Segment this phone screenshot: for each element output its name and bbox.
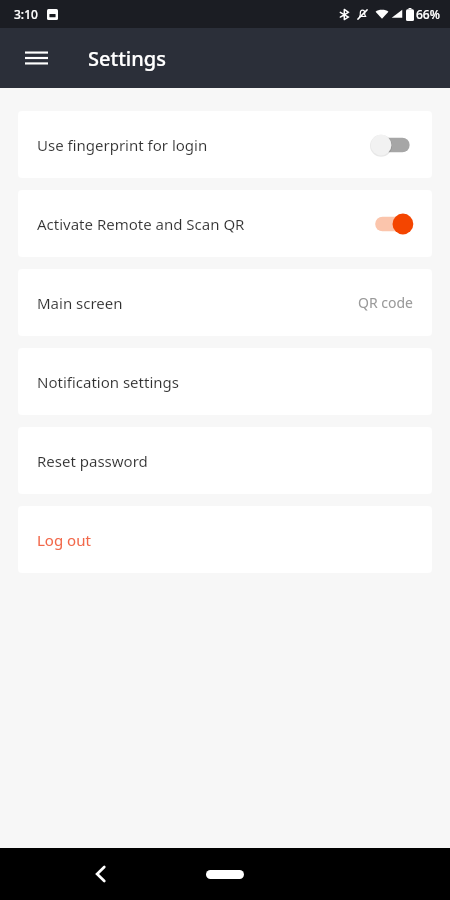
button[interactable]: Toggle on: [371, 211, 413, 237]
button[interactable]: Reset password: [18, 427, 432, 494]
staticText: Reset password: [37, 451, 148, 471]
button[interactable]: Use fingerprint for login: [18, 111, 432, 178]
staticText: 3:10: [14, 6, 38, 22]
button[interactable]: Activate Remote and Scan QR: [18, 190, 432, 257]
button[interactable]: Log out: [18, 506, 432, 573]
staticText: Activate Remote and Scan QR: [37, 214, 245, 234]
button[interactable]: Back: [78, 852, 122, 896]
button[interactable]: Toggle off: [371, 132, 413, 158]
button[interactable]: Open navigation menu: [12, 34, 60, 82]
button[interactable]: Home: [195, 859, 255, 889]
staticText: Settings: [88, 45, 166, 72]
staticText: Main screen: [37, 293, 123, 313]
staticText: Notification settings: [37, 372, 179, 392]
staticText: Log out: [37, 530, 91, 550]
button[interactable]: Notification settings: [18, 348, 432, 415]
staticText: Use fingerprint for login: [37, 135, 208, 155]
staticText: QR code: [358, 293, 413, 312]
staticText: 66%: [416, 6, 440, 22]
button[interactable]: Main screen: [18, 269, 432, 336]
